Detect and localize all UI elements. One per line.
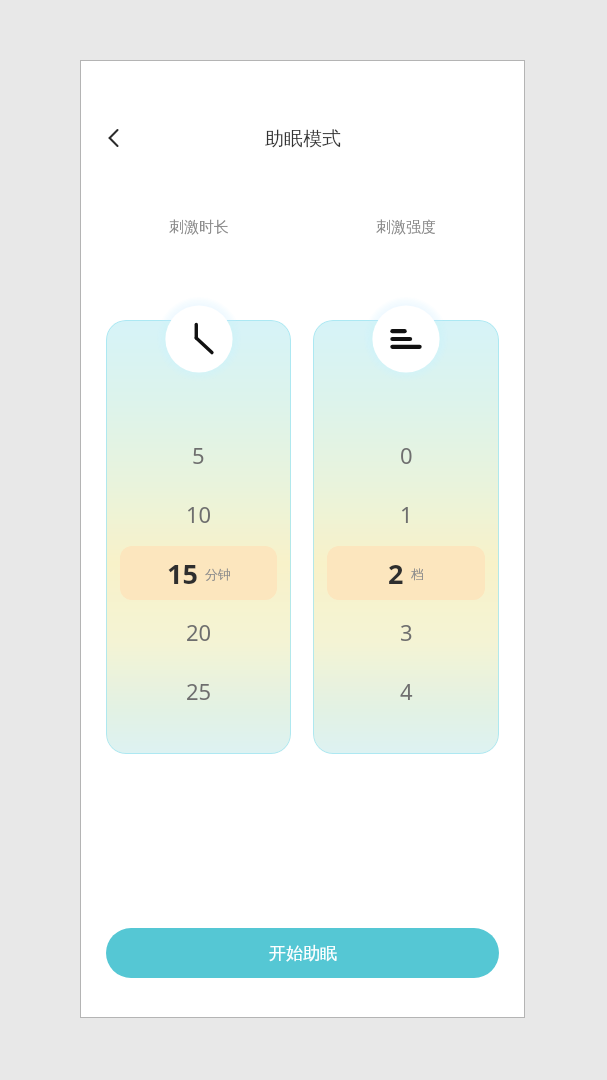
staticText: 刺激强度 [376, 218, 436, 237]
staticText: 3 [400, 617, 413, 647]
staticText: 5 [192, 440, 205, 470]
staticText: 10 [186, 499, 212, 529]
staticText: 档 [411, 566, 424, 582]
button[interactable]: 1 [313, 491, 499, 537]
staticText: 2 [388, 555, 404, 592]
button[interactable]: 4 [313, 668, 499, 714]
button[interactable]: 0 [313, 432, 499, 478]
staticText: 刺激时长 [169, 218, 229, 237]
staticText: 1 [400, 499, 413, 529]
button[interactable]: 2 [327, 546, 485, 600]
staticText: 25 [186, 676, 212, 706]
button[interactable]: 3 [313, 609, 499, 655]
button[interactable]: 20 [106, 609, 291, 655]
button[interactable]: 10 [106, 491, 291, 537]
staticText: 分钟 [205, 566, 231, 582]
staticText: 助眠模式 [265, 127, 341, 151]
button[interactable]: Duration [182, 322, 216, 356]
button[interactable]: 5 [106, 432, 291, 478]
staticText: 4 [400, 676, 413, 706]
button[interactable]: Intensity [389, 322, 423, 356]
button[interactable]: Back [92, 116, 136, 160]
staticText: 开始助眠 [269, 943, 337, 964]
staticText: 20 [186, 617, 212, 647]
button[interactable]: 25 [106, 668, 291, 714]
button[interactable]: 15 [120, 546, 277, 600]
button[interactable]: 开始助眠 [106, 928, 499, 978]
staticText: 0 [400, 440, 413, 470]
staticText: 15 [167, 555, 198, 592]
